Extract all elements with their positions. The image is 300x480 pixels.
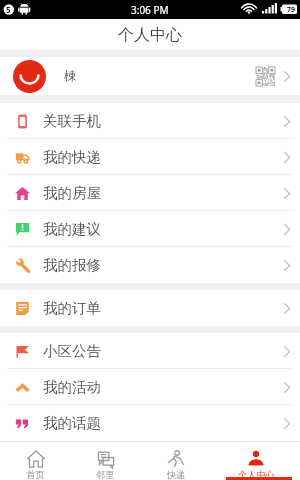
staticText: 我的建议 [43, 220, 101, 238]
button[interactable]: 个人中心 [212, 442, 300, 480]
staticText: 小区公告 [43, 342, 101, 360]
button[interactable]: 关联手机 [0, 103, 300, 139]
button[interactable]: 我的建议 [0, 211, 300, 247]
button[interactable]: 我的话题 [0, 405, 300, 441]
staticText: 关联手机 [43, 112, 101, 130]
button[interactable]: 我的报修 [0, 247, 300, 283]
button[interactable]: 快递 [140, 442, 212, 480]
staticText: 首页 [26, 469, 45, 480]
button[interactable]: 我的订单 [0, 290, 300, 326]
staticText: 我的活动 [43, 378, 101, 396]
button[interactable]: 小区公告 [0, 333, 300, 369]
staticText: 79 [287, 5, 296, 15]
button[interactable]: 我的活动 [0, 369, 300, 405]
button[interactable]: 首页 [0, 442, 71, 480]
button[interactable]: 邻里 [71, 442, 140, 480]
staticText: 棟 [64, 68, 77, 84]
staticText: 我的房屋 [43, 184, 101, 202]
button[interactable]: 我的房屋 [0, 175, 300, 211]
staticText: 个人中心 [118, 25, 182, 45]
staticText: 我的订单 [43, 299, 101, 317]
button[interactable]: 我的快递 [0, 139, 300, 175]
staticText: 3:06 PM [131, 3, 169, 17]
staticText: 我的快递 [43, 148, 101, 166]
staticText: 5 [6, 4, 11, 15]
staticText: 我的话题 [43, 414, 101, 432]
staticText: 我的报修 [43, 256, 101, 274]
staticText: 个人中心 [238, 469, 275, 480]
staticText: 快递 [167, 469, 186, 480]
button[interactable]: 棟 [0, 57, 300, 95]
staticText: 邻里 [96, 469, 115, 480]
